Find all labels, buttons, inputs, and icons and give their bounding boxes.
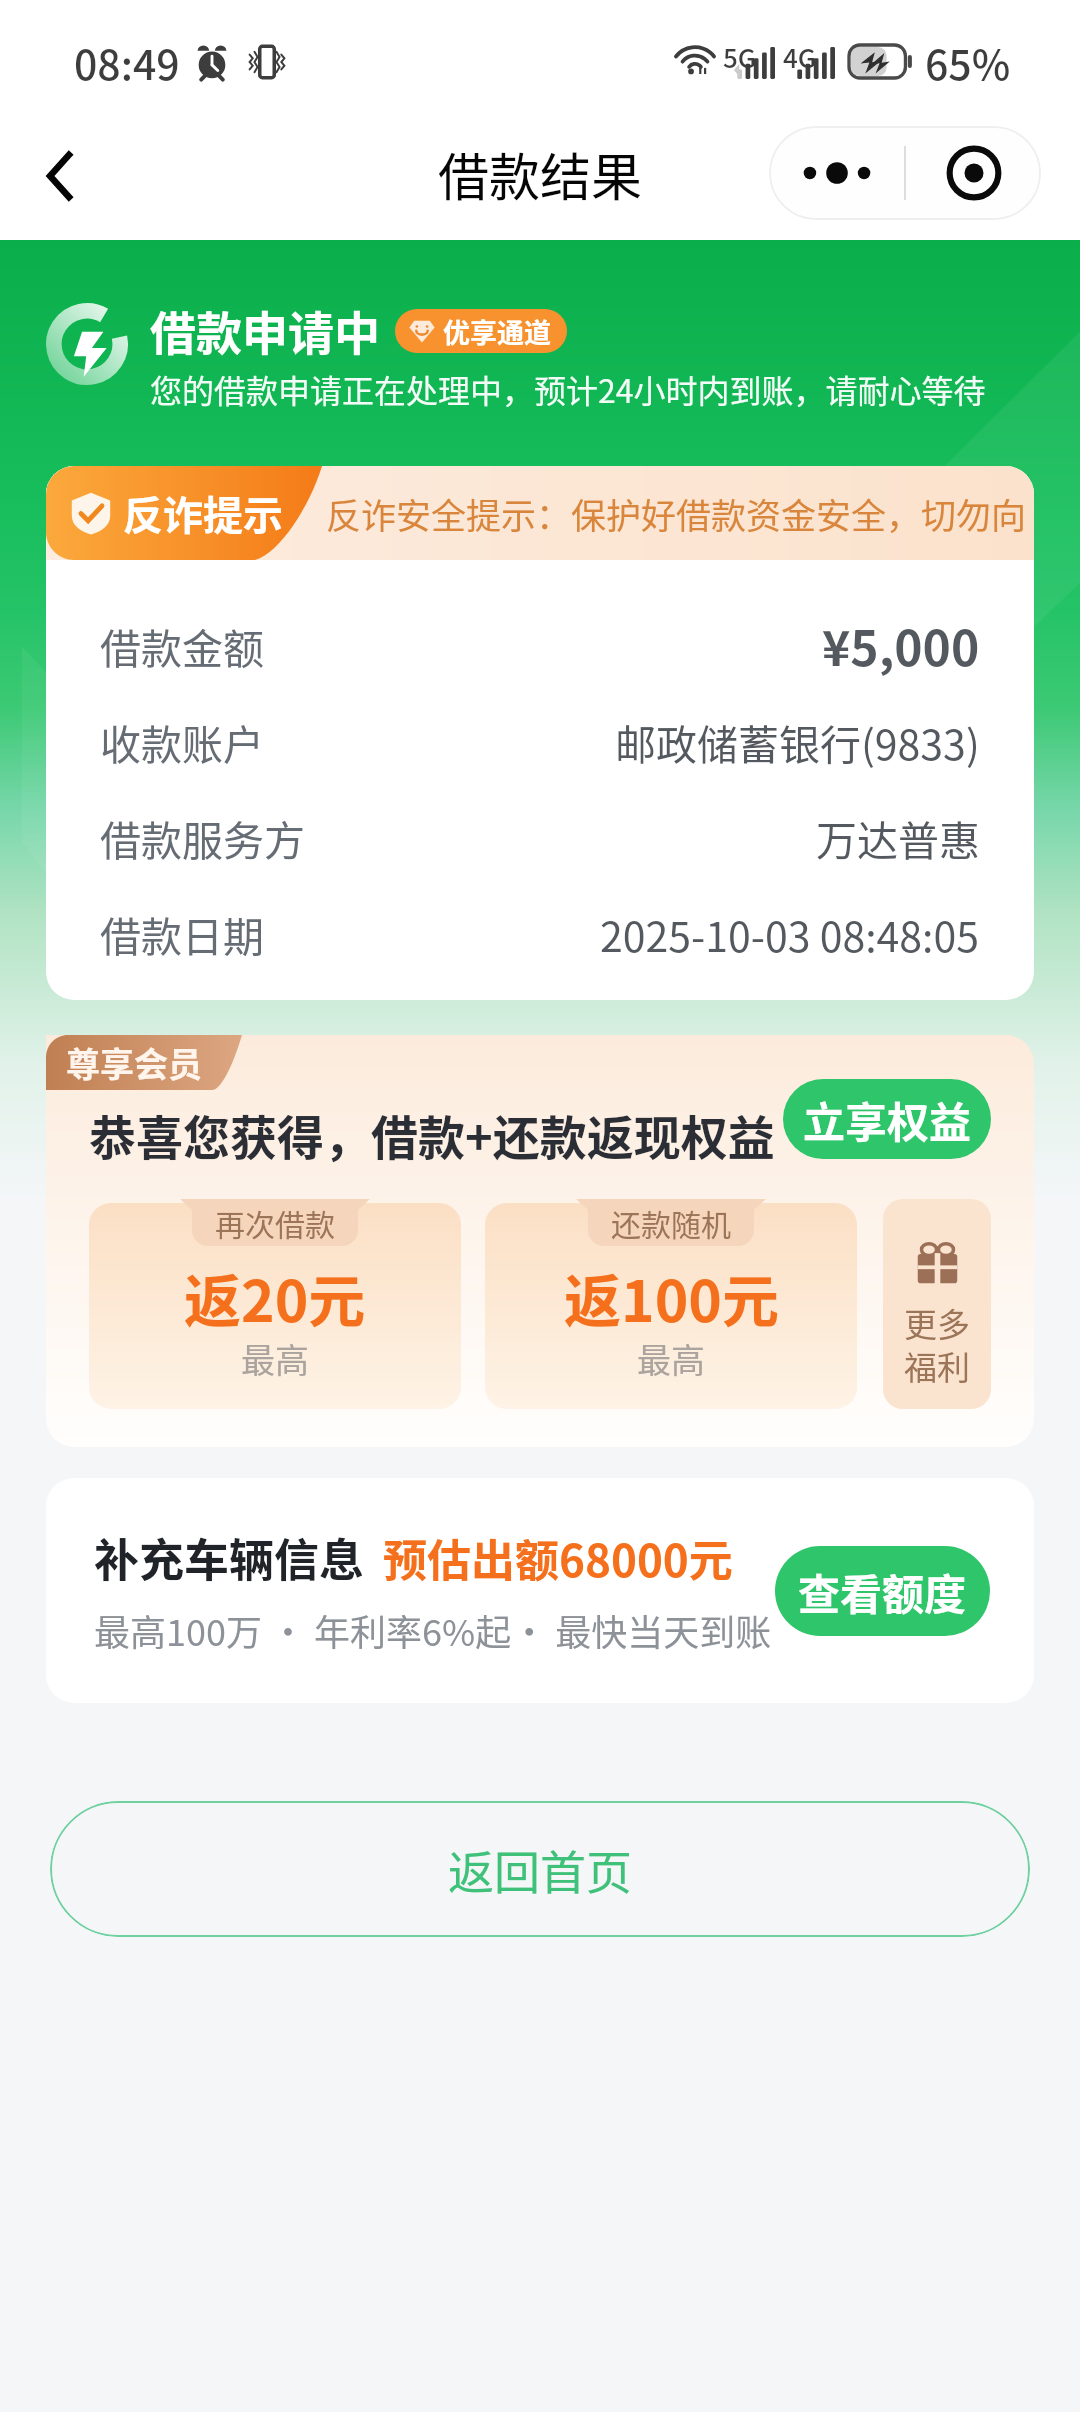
staticText: 借款申请中 (150, 297, 380, 364)
button[interactable]: 再次借款 (89, 1199, 461, 1409)
staticText: 返100元 (564, 1256, 779, 1339)
staticText: 借款金额 (100, 616, 264, 675)
button[interactable]: 查看额度 (775, 1546, 990, 1636)
staticText: 还款随机 (611, 1201, 731, 1244)
staticText: 最高 (637, 1334, 705, 1383)
staticText: 最高 (241, 1334, 309, 1383)
staticText: 65% (925, 32, 1011, 91)
staticText: 恭喜您获得，借款+还款返现权益 (89, 1100, 775, 1168)
staticText: 返20元 (184, 1256, 366, 1339)
staticText: ¥5,000 (822, 610, 980, 680)
button[interactable]: Back (14, 125, 104, 215)
staticText: 补充车辆信息 (94, 1525, 365, 1590)
button[interactable]: 返回首页 (50, 1801, 1030, 1937)
staticText: 借款日期 (100, 904, 264, 963)
staticText: 查看额度 (798, 1561, 967, 1622)
staticText: 万达普惠 (816, 808, 980, 867)
staticText: 反诈提示 (123, 484, 283, 542)
button[interactable]: 优享通道 (395, 309, 567, 353)
staticText: 优享通道 (443, 312, 551, 351)
staticText: 预估出额68000元 (383, 1526, 733, 1590)
staticText: 08:49 (74, 32, 180, 91)
staticText: 再次借款 (215, 1201, 335, 1244)
staticText: 尊享会员 (66, 1038, 202, 1087)
staticText: 4G (783, 38, 817, 73)
button[interactable]: 补充车辆信息 (46, 1478, 1034, 1703)
staticText: 立享权益 (803, 1089, 972, 1150)
button[interactable]: 立享权益 (783, 1079, 991, 1159)
staticText: 2025-10-03 08:48:05 (600, 904, 980, 963)
staticText: 更多 福利 (904, 1299, 970, 1390)
staticText: 最高100万 · 年利率6%起· 最快当天到账 (94, 1604, 772, 1656)
button[interactable]: More options (769, 126, 904, 220)
staticText: 借款服务方 (100, 808, 305, 867)
staticText: 反诈安全提示：保护好借款资金安全，切勿向 (326, 488, 1027, 539)
staticText: 收款账户 (100, 712, 264, 771)
staticText: 邮政储蓄银行(9833) (615, 712, 980, 771)
staticText: 返回首页 (448, 1836, 632, 1903)
button[interactable]: Close (906, 126, 1041, 220)
staticText: 借款结果 (438, 137, 643, 211)
staticText: 5G (723, 38, 757, 73)
staticText: 您的借款申请正在处理中，预计24小时内到账，请耐心等待 (150, 366, 986, 412)
button[interactable]: 更多 福利 (883, 1199, 991, 1409)
button[interactable]: 还款随机 (485, 1199, 857, 1409)
